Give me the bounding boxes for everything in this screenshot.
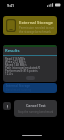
staticText: Results <box>5 48 20 54</box>
staticText: 9:41 <box>7 3 15 8</box>
button[interactable]: Results <box>3 45 57 82</box>
staticText: Stop the running benchmark <box>18 110 54 114</box>
button[interactable]: Cancel Test <box>14 100 57 117</box>
staticText: Cancel Test <box>26 103 46 108</box>
staticText: External Storage <box>19 19 54 25</box>
staticText: the storage benchmark <box>19 30 51 34</box>
button[interactable]: External Storage <box>3 16 57 35</box>
button[interactable]: Share results <box>26 76 35 80</box>
staticText: 12.4 s <box>5 72 13 76</box>
staticText: Write 212 MB/s <box>5 60 26 64</box>
button[interactable]: Information <box>3 102 11 110</box>
staticText: Mixed 148 MB/s <box>5 63 27 67</box>
staticText: Internal Storage <box>6 84 31 88</box>
staticText: Read 316 MB/s <box>5 57 26 61</box>
staticText: Path /storage/emulated/0 <box>5 66 41 70</box>
staticText: Permission needed to run <box>19 26 55 30</box>
button[interactable]: Internal Storage <box>3 83 57 93</box>
staticText: Performance 816 points <box>5 69 38 73</box>
